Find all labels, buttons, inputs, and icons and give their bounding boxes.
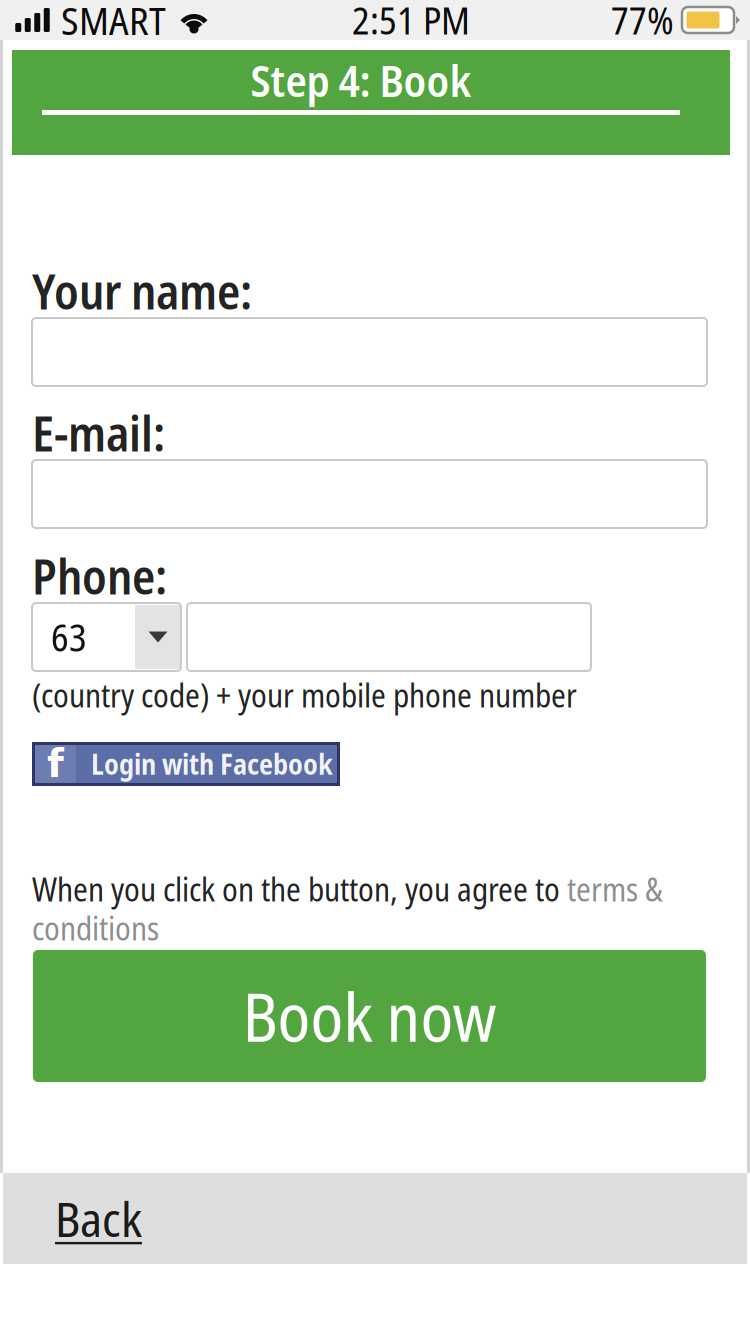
button[interactable]: Text field [32, 318, 707, 386]
staticText: SMART [61, 0, 166, 46]
staticText: Phone: [32, 543, 167, 609]
staticText: 77% [611, 0, 674, 45]
button[interactable]: Book now [33, 950, 706, 1082]
staticText: 2:51 PM [352, 0, 470, 45]
staticText: Book now [242, 971, 496, 1061]
button[interactable]: Text field [32, 460, 707, 528]
button[interactable]: Country code [32, 603, 181, 671]
staticText: Your name: [32, 258, 252, 324]
staticText: conditions [32, 906, 159, 950]
staticText: Login with Facebook [91, 745, 333, 783]
button[interactable]: Back [3, 1173, 747, 1264]
staticText: When you click on the button, you agree … [32, 867, 567, 911]
staticText: 63 [51, 612, 87, 662]
staticText: f [47, 741, 64, 786]
button[interactable]: f [32, 742, 340, 786]
staticText: Step 4: Book [250, 50, 471, 110]
button[interactable]: Text field [187, 603, 591, 671]
staticText: terms & [567, 867, 663, 911]
staticText: E-mail: [32, 400, 165, 466]
staticText: (country code) + your mobile phone numbe… [32, 673, 577, 717]
staticText: Back [55, 1186, 142, 1251]
